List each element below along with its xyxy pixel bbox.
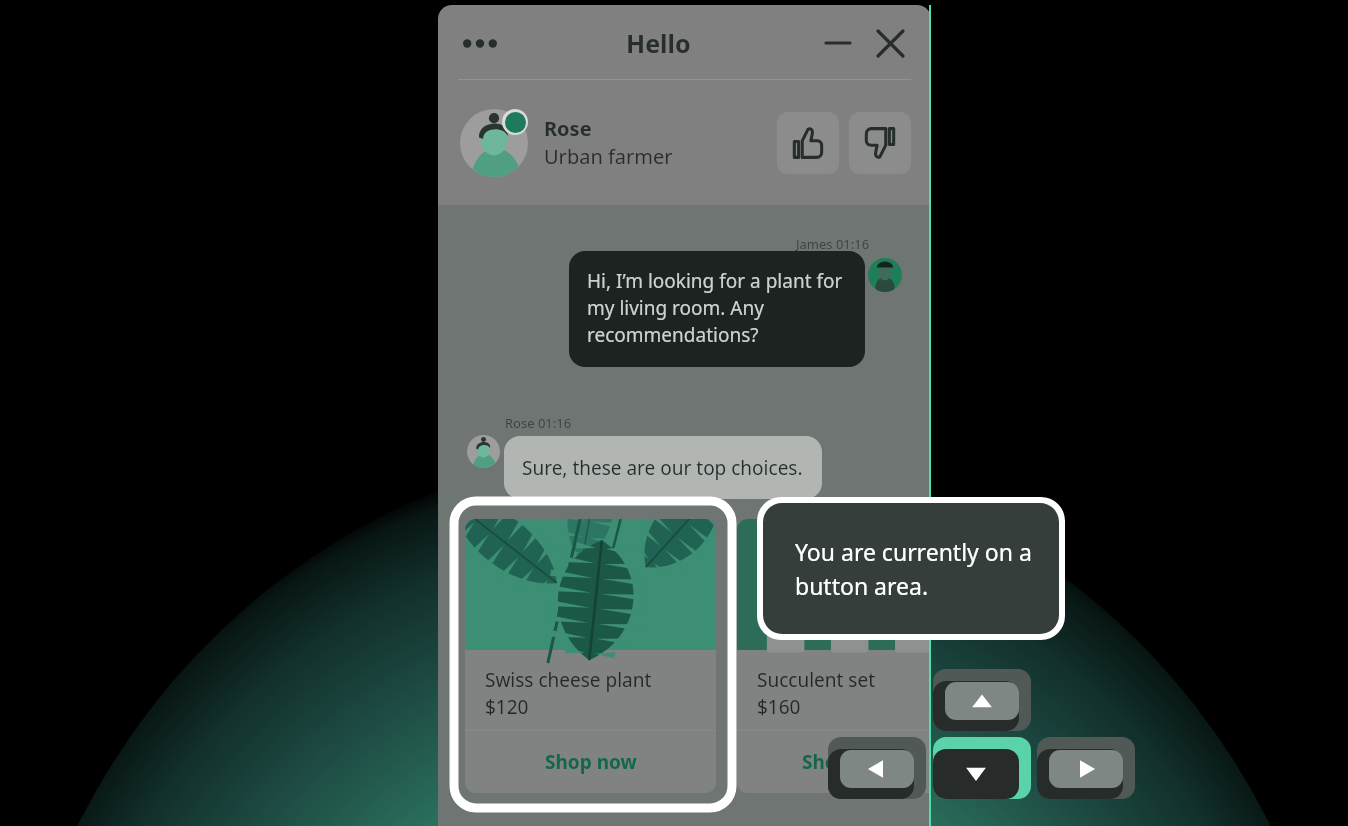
button[interactable]: Navigate down <box>933 737 1031 799</box>
button[interactable]: Navigate up <box>933 669 1031 731</box>
staticText: $160 <box>757 694 801 720</box>
button[interactable]: Navigate left <box>828 737 926 799</box>
button[interactable]: Succulent set <box>737 519 931 793</box>
staticText: Hi, I’m looking for a plant for my livin… <box>587 268 851 348</box>
staticText: Shop now <box>802 749 894 775</box>
button[interactable]: Swiss cheese plant <box>465 519 716 793</box>
staticText: Sure, these are our top choices. <box>522 455 803 481</box>
staticText: Urban farmer <box>544 143 673 170</box>
staticText: $120 <box>485 694 529 720</box>
button[interactable]: Thumbs up <box>777 112 839 174</box>
staticText: Rose 01:16 <box>505 414 572 432</box>
button[interactable]: Navigate right <box>1037 737 1135 799</box>
button[interactable]: More options <box>458 23 502 63</box>
staticText: Shop now <box>545 749 637 775</box>
staticText: James 01:16 <box>796 235 870 253</box>
staticText: You are currently on a button area. <box>795 536 1039 601</box>
button[interactable]: Thumbs down <box>849 112 911 174</box>
staticText: Rose <box>544 115 592 142</box>
staticText: Succulent set <box>757 667 875 693</box>
staticText: Hello <box>626 26 691 60</box>
button[interactable]: Minimize <box>815 23 861 63</box>
staticText: Swiss cheese plant <box>485 667 652 693</box>
button[interactable]: Close <box>867 23 913 63</box>
